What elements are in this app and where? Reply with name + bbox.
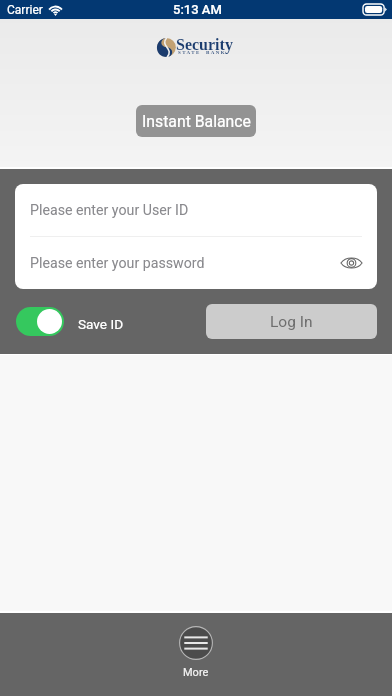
button[interactable]: Log In bbox=[206, 304, 377, 339]
staticText: More bbox=[183, 666, 209, 679]
button[interactable]: Save ID bbox=[16, 307, 124, 336]
staticText: Instant Balance bbox=[142, 112, 251, 131]
staticText: Log In bbox=[270, 313, 313, 331]
staticText: Carrier bbox=[7, 3, 43, 17]
staticText: Security bbox=[176, 36, 233, 54]
button[interactable]: Show password bbox=[336, 248, 366, 278]
button[interactable]: Please enter your User ID bbox=[15, 184, 377, 236]
staticText: Please enter your User ID bbox=[30, 202, 189, 219]
staticText: Save ID bbox=[78, 316, 124, 332]
staticText: STATE BANK bbox=[178, 50, 227, 56]
button[interactable]: Instant Balance bbox=[136, 105, 256, 137]
staticText: 5:13 AM bbox=[173, 2, 222, 17]
button[interactable]: More bbox=[179, 626, 213, 679]
button[interactable]: Please enter your password bbox=[15, 237, 377, 289]
staticText: Please enter your password bbox=[30, 255, 205, 272]
